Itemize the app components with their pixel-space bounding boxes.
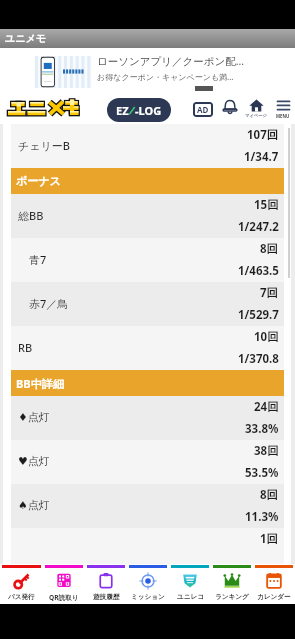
button[interactable]: 広告 (193, 102, 213, 117)
staticText: ユニメモ (5, 32, 46, 45)
button[interactable]: QR読取り (43, 564, 85, 604)
button[interactable]: パス発行 (0, 564, 43, 604)
staticText: 1/529.7 (238, 307, 279, 323)
staticText: 10回 (254, 329, 279, 345)
staticText: BB中詳細 (16, 376, 64, 391)
button[interactable]: ♥点灯 (0, 440, 295, 484)
staticText: 遊技履歴 (93, 593, 120, 601)
staticText: 8回 (260, 487, 279, 503)
staticText: 1/34.7 (244, 149, 279, 165)
button[interactable]: 総BB (0, 194, 295, 238)
staticText: 33.8% (245, 421, 279, 437)
staticText: ランキング (215, 593, 249, 601)
button[interactable]: ユニレコ (169, 564, 211, 604)
staticText: 青7 (29, 252, 47, 267)
staticText: 1/463.5 (238, 263, 279, 279)
staticText: QR読取り (49, 593, 79, 602)
staticText: ♥点灯 (18, 454, 50, 468)
staticText: ♠点灯 (18, 498, 50, 512)
button[interactable]: ローソンアプリ／クーポン配... (0, 48, 295, 96)
button[interactable]: マイページ (244, 98, 268, 118)
staticText: 24回 (254, 399, 279, 415)
button[interactable]: カレンダー (253, 564, 295, 604)
staticText: ミッション (131, 593, 165, 601)
button[interactable]: ♦点灯 (0, 396, 295, 440)
staticText: 8回 (260, 241, 279, 257)
staticText: MENU (276, 113, 290, 119)
staticText: ♦点灯 (18, 410, 50, 424)
button[interactable]: ユニメモ (7, 99, 78, 120)
button[interactable]: ランキング (211, 564, 253, 604)
staticText: 7回 (260, 285, 279, 301)
button[interactable]: 遊技履歴 (85, 564, 127, 604)
button[interactable]: ♠点灯 (0, 484, 295, 528)
button[interactable]: ミッション (127, 564, 169, 604)
staticText: ローソンアプリ／クーポン配... (97, 54, 245, 68)
staticText: -LOG (135, 103, 162, 118)
staticText: RB (18, 340, 33, 355)
staticText: 総BB (18, 208, 44, 223)
button[interactable]: チェリーB (0, 124, 295, 168)
staticText: 1回 (260, 531, 279, 547)
button[interactable]: MENU (271, 98, 295, 119)
staticText: ボーナス (16, 174, 61, 188)
staticText: AD (197, 104, 209, 115)
staticText: チェリーB (18, 138, 70, 153)
button[interactable]: 赤7／鳥 (0, 282, 295, 326)
staticText: お得なクーポン・キャンペーンも満... (97, 71, 234, 82)
staticText: EZ (116, 103, 129, 118)
staticText: 1/247.2 (238, 219, 279, 235)
staticText: カレンダー (257, 593, 291, 601)
staticText: パス発行 (8, 593, 35, 601)
staticText: 38回 (254, 443, 279, 459)
staticText: マイページ (245, 113, 267, 118)
button[interactable]: RB (0, 326, 295, 370)
button[interactable]: 青7 (0, 238, 295, 282)
staticText: 53.5% (245, 465, 279, 481)
button[interactable]: 1回 (0, 528, 295, 564)
button[interactable]: お知らせ (221, 98, 239, 116)
staticText: 11.3% (245, 509, 279, 525)
button[interactable]: EZ (107, 98, 171, 122)
staticText: 15回 (254, 197, 279, 213)
staticText: 1/370.8 (238, 351, 279, 367)
staticText: 赤7／鳥 (29, 296, 69, 311)
staticText: ユニレコ (177, 593, 204, 601)
staticText: 107回 (247, 127, 279, 143)
